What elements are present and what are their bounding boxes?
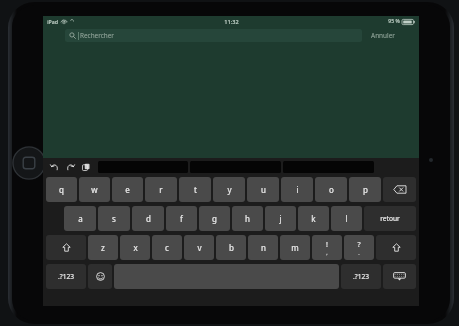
- staticText: a: [78, 213, 83, 224]
- button[interactable]: !: [312, 235, 342, 260]
- staticText: b: [229, 242, 234, 253]
- button[interactable]: m: [280, 235, 310, 260]
- staticText: j: [279, 213, 282, 224]
- button[interactable]: .?123: [341, 264, 381, 289]
- button[interactable]: e: [112, 177, 143, 202]
- button[interactable]: Shift: [376, 235, 416, 260]
- staticText: !: [326, 239, 328, 249]
- staticText: w: [91, 184, 98, 195]
- staticText: .?123: [58, 272, 74, 281]
- staticText: n: [261, 242, 266, 253]
- button[interactable]: Annuler: [369, 30, 397, 41]
- button[interactable]: n: [248, 235, 278, 260]
- staticText: 11:32: [224, 18, 239, 26]
- staticText: p: [363, 184, 368, 195]
- staticText: t: [194, 184, 197, 195]
- staticText: s: [112, 213, 116, 224]
- staticText: 95 %: [388, 18, 400, 25]
- button[interactable]: q: [46, 177, 77, 202]
- button[interactable]: c: [152, 235, 182, 260]
- staticText: i: [296, 184, 299, 195]
- button[interactable]: o: [315, 177, 347, 202]
- button[interactable]: Emoji: [88, 264, 112, 289]
- button[interactable]: a: [64, 206, 96, 231]
- button[interactable]: g: [199, 206, 230, 231]
- staticText: r: [159, 184, 163, 195]
- button[interactable]: z: [88, 235, 118, 260]
- button[interactable]: f: [166, 206, 197, 231]
- button[interactable]: s: [98, 206, 130, 231]
- button[interactable]: l: [331, 206, 362, 231]
- button[interactable]: Rechercher: [65, 29, 362, 42]
- button[interactable]: x: [120, 235, 150, 260]
- button[interactable]: w: [79, 177, 110, 202]
- staticText: q: [59, 184, 64, 195]
- staticText: k: [311, 213, 316, 224]
- button[interactable]: Home: [12, 146, 46, 180]
- button[interactable]: y: [213, 177, 245, 202]
- button[interactable]: h: [232, 206, 263, 231]
- button[interactable]: u: [247, 177, 279, 202]
- staticText: l: [345, 213, 348, 224]
- button[interactable]: Undo: [46, 160, 62, 174]
- button[interactable]: j: [265, 206, 296, 231]
- staticText: e: [125, 184, 130, 195]
- button[interactable]: t: [179, 177, 211, 202]
- button[interactable]: Delete: [383, 177, 416, 202]
- staticText: d: [146, 213, 151, 224]
- staticText: retour: [380, 214, 400, 223]
- button[interactable]: d: [132, 206, 164, 231]
- staticText: iPad: [47, 18, 58, 25]
- button[interactable]: r: [145, 177, 177, 202]
- button[interactable]: Hide keyboard: [383, 264, 416, 289]
- staticText: ?: [357, 239, 361, 249]
- button[interactable]: Paste: [78, 160, 94, 174]
- button[interactable]: i: [281, 177, 313, 202]
- button[interactable]: v: [184, 235, 214, 260]
- staticText: y: [227, 184, 232, 195]
- staticText: ,: [326, 249, 328, 256]
- button[interactable]: .?123: [46, 264, 86, 289]
- button[interactable]: b: [216, 235, 246, 260]
- staticText: Annuler: [371, 31, 395, 40]
- staticText: f: [180, 213, 183, 224]
- staticText: .?123: [353, 272, 369, 281]
- staticText: m: [291, 242, 299, 253]
- button[interactable]: retour: [364, 206, 416, 231]
- staticText: c: [165, 242, 169, 253]
- staticText: g: [212, 213, 217, 224]
- staticText: h: [245, 213, 250, 224]
- button[interactable]: ?: [344, 235, 374, 260]
- staticText: v: [197, 242, 202, 253]
- staticText: .: [358, 249, 360, 256]
- button[interactable]: k: [298, 206, 329, 231]
- button[interactable]: Shift: [46, 235, 86, 260]
- staticText: u: [261, 184, 266, 195]
- staticText: Rechercher: [80, 31, 114, 40]
- staticText: o: [329, 184, 334, 195]
- staticText: x: [133, 242, 138, 253]
- staticText: z: [101, 242, 105, 253]
- button[interactable]: Redo: [62, 160, 78, 174]
- button[interactable]: p: [349, 177, 381, 202]
